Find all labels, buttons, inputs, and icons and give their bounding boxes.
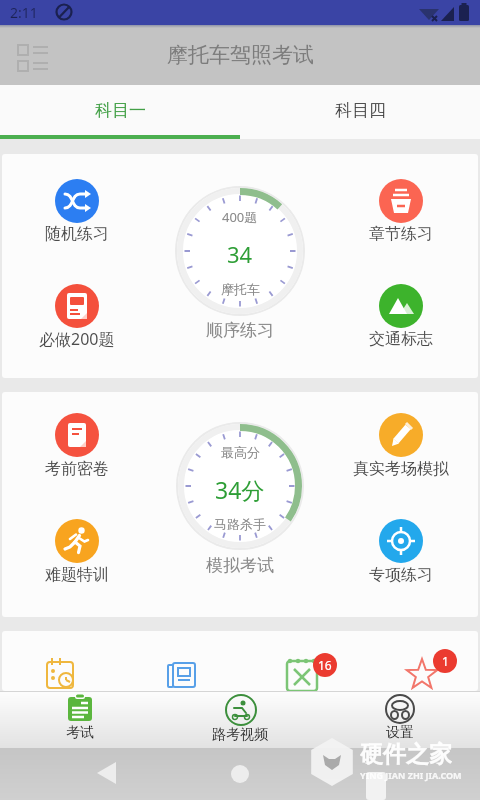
staticText: 考前密卷 <box>45 459 109 479</box>
staticText: 1 <box>442 653 449 669</box>
button[interactable] <box>160 748 320 800</box>
staticText: 难题特训 <box>45 565 109 585</box>
staticText: 2:11 <box>10 3 38 22</box>
button[interactable]: 必做200题 <box>15 284 139 350</box>
staticText: 模拟考试 <box>206 555 274 576</box>
staticText: 章节练习 <box>369 224 433 244</box>
staticText: 路考视频 <box>212 726 268 744</box>
button[interactable]: 科目四 <box>240 85 480 135</box>
staticText: 专项练习 <box>369 565 433 585</box>
button[interactable] <box>121 631 240 691</box>
button[interactable] <box>2 631 121 691</box>
staticText: 必做200题 <box>39 328 115 350</box>
button[interactable]: 专项练习 <box>339 519 463 586</box>
staticText: 科目四 <box>335 100 386 121</box>
button[interactable] <box>320 748 480 800</box>
button[interactable]: 章节练习 <box>339 179 463 245</box>
staticText: 34 <box>227 239 253 269</box>
staticText: 摩托车驾照考试 <box>167 42 314 68</box>
button[interactable] <box>359 631 478 691</box>
button[interactable]: 交通标志 <box>339 284 463 350</box>
staticText: 16 <box>318 657 332 673</box>
staticText: 摩托车 <box>221 281 260 297</box>
button[interactable] <box>320 691 480 748</box>
staticText: 随机练习 <box>45 224 109 244</box>
staticText: 马路杀手 <box>214 516 266 532</box>
staticText: 设置 <box>386 724 414 742</box>
button[interactable]: 科目一 <box>0 85 240 135</box>
button[interactable] <box>0 748 160 800</box>
button[interactable] <box>178 424 302 577</box>
button[interactable] <box>177 188 303 342</box>
button[interactable] <box>240 631 359 691</box>
staticText: 顺序练习 <box>206 320 274 341</box>
button[interactable]: 考前密卷 <box>15 413 139 480</box>
button[interactable]: 真实考场模拟 <box>339 413 463 480</box>
staticText: 400题 <box>222 208 258 226</box>
button[interactable]: 难题特训 <box>15 519 139 586</box>
button[interactable] <box>160 691 320 748</box>
staticText: 34分 <box>215 474 265 505</box>
button[interactable] <box>0 691 160 748</box>
staticText: 科目一 <box>95 100 146 121</box>
staticText: 考试 <box>66 724 94 742</box>
staticText: 交通标志 <box>369 329 433 349</box>
staticText: 硬件之家 <box>360 740 452 768</box>
staticText: YING JIAN ZHI JIA.COM <box>360 769 462 781</box>
staticText: 最高分 <box>221 444 260 460</box>
button[interactable] <box>10 37 54 81</box>
staticText: 真实考场模拟 <box>353 459 449 479</box>
button[interactable]: 随机练习 <box>15 179 139 245</box>
